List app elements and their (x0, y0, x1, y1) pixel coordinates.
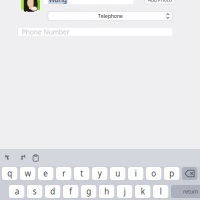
button[interactable]: f (63, 185, 78, 198)
button[interactable]: g (81, 185, 96, 198)
staticText: d (50, 186, 55, 197)
staticText: t (80, 168, 83, 179)
staticText: e (43, 168, 48, 179)
staticText: Wang (49, 0, 67, 4)
button[interactable]: return (171, 185, 200, 198)
button[interactable]: y (92, 167, 107, 180)
staticText: s (33, 186, 37, 197)
staticText: Phone Number (22, 27, 70, 36)
staticText: i (135, 168, 137, 179)
button[interactable]: h (99, 185, 114, 198)
staticText: p (169, 168, 174, 179)
staticText: w (25, 168, 31, 179)
staticText: Add Photo (148, 0, 172, 3)
staticText: k (141, 186, 145, 197)
staticText: u (115, 168, 120, 179)
staticText: Telephone (98, 12, 123, 20)
button[interactable]: o (146, 167, 161, 180)
button[interactable]: q (2, 167, 17, 180)
button[interactable]: e (38, 167, 53, 180)
button[interactable]: Delete (182, 167, 197, 180)
button[interactable]: u (110, 167, 125, 180)
button[interactable]: j (117, 185, 132, 198)
button[interactable]: r (56, 167, 71, 180)
button[interactable]: w (20, 167, 35, 180)
button[interactable]: k (135, 185, 150, 198)
staticText: a (15, 186, 19, 197)
staticText: r (62, 168, 65, 179)
staticText: q (7, 168, 12, 179)
button[interactable]: Paste (31, 152, 40, 163)
button[interactable]: l (153, 185, 168, 198)
staticText: y (98, 168, 102, 179)
button[interactable]: Telephone (48, 11, 172, 21)
staticText: h (104, 186, 109, 197)
staticText: o (151, 168, 156, 179)
staticText: j (124, 186, 126, 197)
staticText: f (69, 186, 72, 197)
staticText: return (183, 188, 198, 195)
button[interactable]: p (164, 167, 179, 180)
button[interactable]: d (45, 185, 60, 198)
button[interactable]: a (9, 185, 24, 198)
button[interactable]: Undo (4, 152, 13, 163)
button[interactable]: t (74, 167, 89, 180)
staticText: g (86, 186, 91, 197)
button[interactable]: i (128, 167, 143, 180)
button[interactable]: s (27, 185, 42, 198)
staticText: l (160, 186, 162, 197)
button[interactable]: Add Photo (144, 0, 175, 4)
button[interactable]: Redo (18, 152, 27, 163)
